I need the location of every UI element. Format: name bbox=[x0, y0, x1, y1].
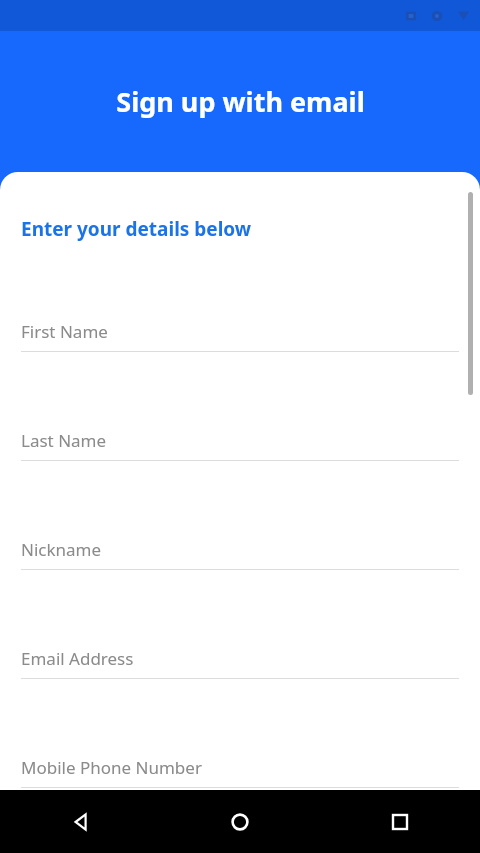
button[interactable]: Mobile Phone Number bbox=[21, 715, 459, 788]
button[interactable]: Home bbox=[160, 790, 320, 853]
button[interactable]: Nickname bbox=[21, 497, 459, 570]
staticText: Email Address bbox=[21, 647, 134, 670]
staticText: Nickname bbox=[21, 538, 102, 561]
staticText: First Name bbox=[21, 320, 108, 343]
button[interactable]: Email Address bbox=[21, 606, 459, 679]
staticText: Sign up with email bbox=[116, 83, 365, 120]
button[interactable]: Back bbox=[0, 790, 160, 853]
staticText: Mobile Phone Number bbox=[21, 756, 202, 779]
button[interactable]: Enter your details below bbox=[21, 216, 252, 242]
staticText: Last Name bbox=[21, 429, 107, 452]
button[interactable]: Recent apps bbox=[320, 790, 480, 853]
button[interactable]: First Name bbox=[21, 279, 459, 352]
button[interactable]: Last Name bbox=[21, 388, 459, 461]
